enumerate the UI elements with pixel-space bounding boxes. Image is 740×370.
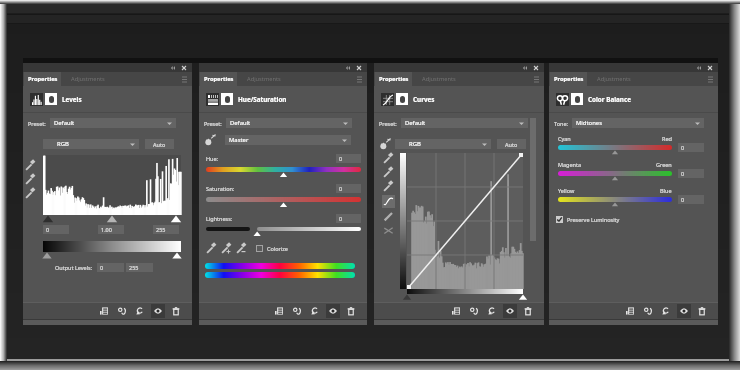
staticText: Auto xyxy=(153,141,166,148)
button[interactable]: 1.00 xyxy=(98,225,124,234)
button[interactable]: Collapse panel xyxy=(521,64,529,72)
button[interactable]: Close panel xyxy=(532,64,540,72)
button[interactable]: Default xyxy=(226,118,352,128)
button[interactable]: Eyedropper xyxy=(206,243,217,254)
staticText: Preset: xyxy=(204,120,222,127)
button[interactable]: Collapse panel xyxy=(695,64,703,72)
button[interactable]: Reset xyxy=(133,304,147,318)
button[interactable]: Toggle layer visibility xyxy=(677,304,691,318)
button[interactable]: 255 xyxy=(126,263,153,272)
button[interactable]: 0 xyxy=(97,263,124,272)
staticText: 0 xyxy=(100,264,104,271)
button[interactable]: View previous state xyxy=(641,304,655,318)
button[interactable]: Eyedropper xyxy=(25,160,36,171)
button[interactable]: Properties xyxy=(24,72,61,86)
button[interactable]: On-image adjustment tool xyxy=(379,138,391,150)
button[interactable]: Close panel xyxy=(180,64,188,72)
button[interactable]: RGB xyxy=(43,139,139,149)
button[interactable]: Clip to layer xyxy=(272,304,286,318)
staticText: 0 xyxy=(339,215,343,222)
staticText: Hue/Saturation xyxy=(238,95,287,104)
button[interactable]: View previous state xyxy=(115,304,129,318)
staticText: 0 xyxy=(46,226,50,233)
button[interactable]: Eyedropper xyxy=(383,181,394,192)
staticText: 0 xyxy=(681,196,685,203)
button[interactable]: Panel menu xyxy=(532,75,540,83)
button[interactable]: 0 xyxy=(678,143,704,152)
button[interactable]: Eyedropper xyxy=(25,174,36,185)
button[interactable]: View previous state xyxy=(290,304,304,318)
staticText: 255 xyxy=(129,264,139,271)
button[interactable]: 0 xyxy=(336,184,361,193)
button[interactable]: Default xyxy=(401,118,528,128)
button[interactable]: 0 xyxy=(43,225,69,234)
button[interactable]: Colorize xyxy=(256,245,288,252)
button[interactable]: Close panel xyxy=(355,64,363,72)
button[interactable]: Delete adjustment layer xyxy=(344,304,358,318)
staticText: Master xyxy=(229,136,249,144)
button[interactable]: Smooth curve xyxy=(383,225,394,236)
button[interactable]: Auto xyxy=(145,139,174,149)
button[interactable]: On-image adjustment tool xyxy=(204,134,216,146)
button[interactable]: Properties xyxy=(375,72,412,86)
staticText: 0 xyxy=(681,144,685,151)
staticText: 0 xyxy=(339,155,343,162)
button[interactable]: Clip to layer xyxy=(449,304,463,318)
button[interactable]: Eyedropper xyxy=(383,153,394,164)
staticText: Lightness: xyxy=(206,215,233,222)
button[interactable]: Reset xyxy=(659,304,673,318)
staticText: Preset: xyxy=(379,120,397,127)
staticText: Auto xyxy=(505,141,518,148)
staticText: Magenta xyxy=(558,161,582,168)
button[interactable]: Pencil xyxy=(383,211,394,222)
button[interactable]: 255 xyxy=(153,225,179,234)
button[interactable]: Panel menu xyxy=(355,75,363,83)
staticText: Cyan xyxy=(558,135,571,142)
button[interactable]: Eyedropper xyxy=(383,167,394,178)
button[interactable]: Adjustments xyxy=(593,72,635,86)
button[interactable]: Delete adjustment layer xyxy=(695,304,709,318)
button[interactable]: Delete adjustment layer xyxy=(169,304,183,318)
staticText: Green xyxy=(656,161,672,168)
button[interactable]: Adjustments xyxy=(67,72,109,86)
button[interactable]: 0 xyxy=(678,169,704,178)
button[interactable]: Panel menu xyxy=(706,75,714,83)
button[interactable]: Auto xyxy=(497,139,526,149)
button[interactable]: Clip to layer xyxy=(623,304,637,318)
staticText: RGB xyxy=(409,140,421,148)
button[interactable]: Reset xyxy=(308,304,322,318)
button[interactable]: 0 xyxy=(336,154,361,163)
button[interactable]: Properties xyxy=(200,72,237,86)
button[interactable]: Adjustments xyxy=(418,72,460,86)
button[interactable]: Preserve Luminosity xyxy=(556,216,620,223)
button[interactable]: Properties xyxy=(550,72,587,86)
button[interactable]: Delete adjustment layer xyxy=(521,304,535,318)
staticText: Saturation: xyxy=(206,185,235,192)
button[interactable]: Default xyxy=(50,118,176,128)
button[interactable]: Clip to layer xyxy=(97,304,111,318)
button[interactable]: Eyedropper xyxy=(221,243,232,254)
button[interactable]: View previous state xyxy=(467,304,481,318)
button[interactable]: 0 xyxy=(336,214,361,223)
button[interactable]: 0 xyxy=(678,195,704,204)
button[interactable]: Panel menu xyxy=(180,75,188,83)
button[interactable]: Adjustments xyxy=(243,72,285,86)
staticText: Tone: xyxy=(554,120,568,127)
button[interactable]: Eyedropper xyxy=(236,243,247,254)
staticText: Properties xyxy=(379,75,409,83)
button[interactable]: RGB xyxy=(395,139,491,149)
button[interactable]: Toggle layer visibility xyxy=(326,304,340,318)
button[interactable]: Midtones xyxy=(572,118,704,128)
button[interactable]: Toggle layer visibility xyxy=(151,304,165,318)
staticText: 255 xyxy=(156,226,166,233)
button[interactable]: Eyedropper xyxy=(25,188,36,199)
button[interactable]: Close panel xyxy=(706,64,714,72)
button[interactable]: Collapse panel xyxy=(344,64,352,72)
staticText: Hue: xyxy=(206,155,219,162)
button[interactable]: Collapse panel xyxy=(169,64,177,72)
button[interactable]: Reset xyxy=(485,304,499,318)
staticText: Adjustments xyxy=(247,75,281,83)
button[interactable]: Master xyxy=(225,135,351,145)
button[interactable]: Curve tool xyxy=(382,195,395,208)
button[interactable]: Toggle layer visibility xyxy=(503,304,517,318)
